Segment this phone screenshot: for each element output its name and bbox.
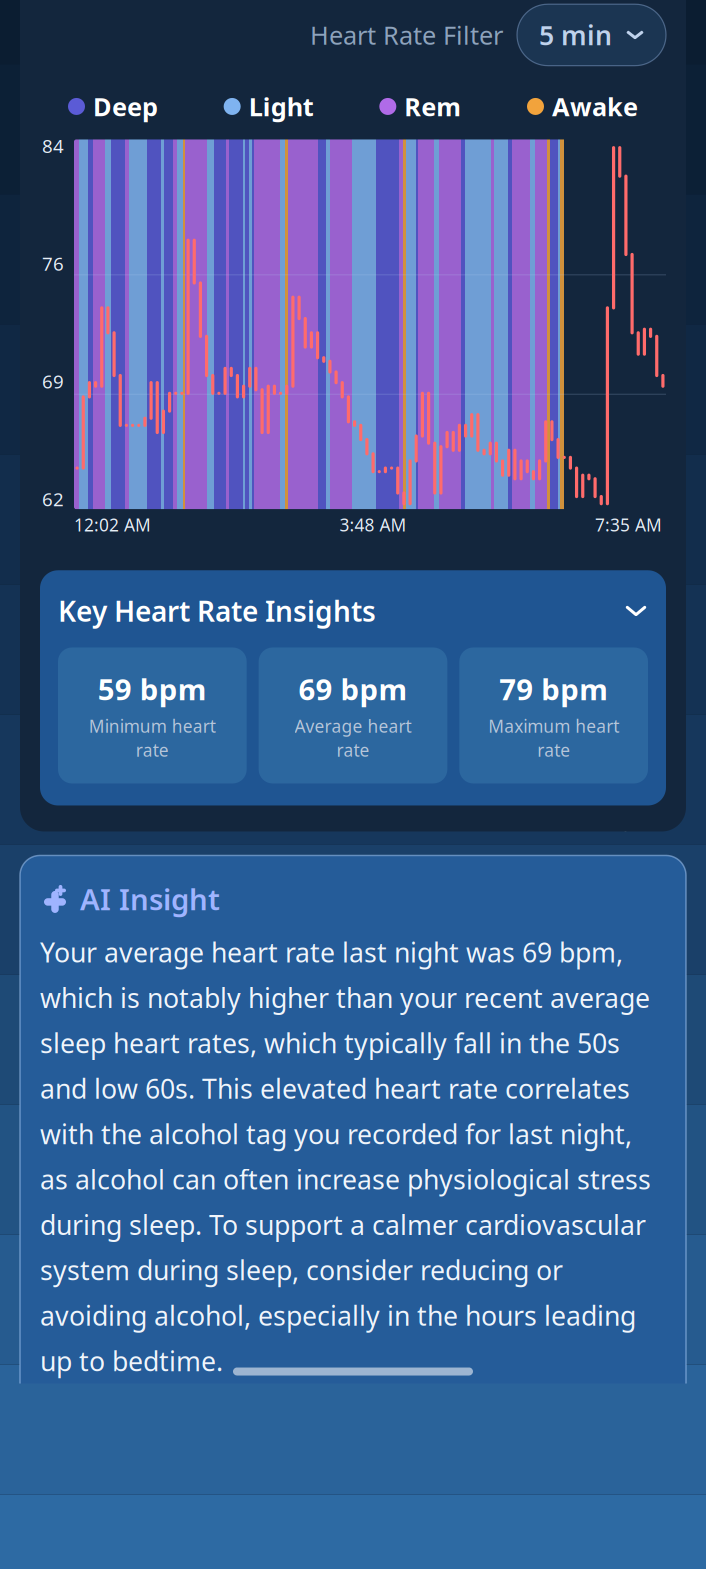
- staticText: 84: [42, 133, 64, 158]
- staticText: Heart Rate Filter: [310, 18, 503, 52]
- staticText: Light: [249, 90, 314, 123]
- staticText: 76: [42, 251, 64, 276]
- staticText: 7:35 AM: [595, 513, 662, 536]
- staticText: 62: [42, 486, 64, 511]
- staticText: 69: [42, 369, 64, 394]
- button[interactable]: 5 min: [517, 4, 666, 66]
- staticText: 79 bpm: [499, 669, 608, 708]
- staticText: Maximum heart: [488, 714, 619, 737]
- staticText: HRV During Sleep: [40, 1469, 304, 1509]
- staticText: Awake: [552, 90, 638, 123]
- staticText: Minimum heart: [89, 714, 216, 737]
- staticText: 3:48 AM: [339, 513, 406, 536]
- staticText: rate: [336, 738, 369, 761]
- staticText: 59 bpm: [98, 669, 207, 708]
- staticText: Key Heart Rate Insights: [58, 592, 376, 629]
- staticText: AI Insight: [80, 879, 220, 918]
- staticText: 12:02 AM: [74, 513, 151, 536]
- staticText: rate: [136, 738, 169, 761]
- staticText: Deep: [93, 90, 158, 123]
- staticText: Your average heart rate last night was 6…: [40, 934, 651, 1378]
- staticText: Average heart: [294, 714, 411, 737]
- staticText: rate: [537, 738, 570, 761]
- staticText: 69 bpm: [298, 669, 407, 708]
- button[interactable]: Key Heart Rate Insights: [58, 592, 648, 629]
- staticText: Rem: [404, 90, 461, 123]
- staticText: 5 min: [539, 17, 612, 53]
